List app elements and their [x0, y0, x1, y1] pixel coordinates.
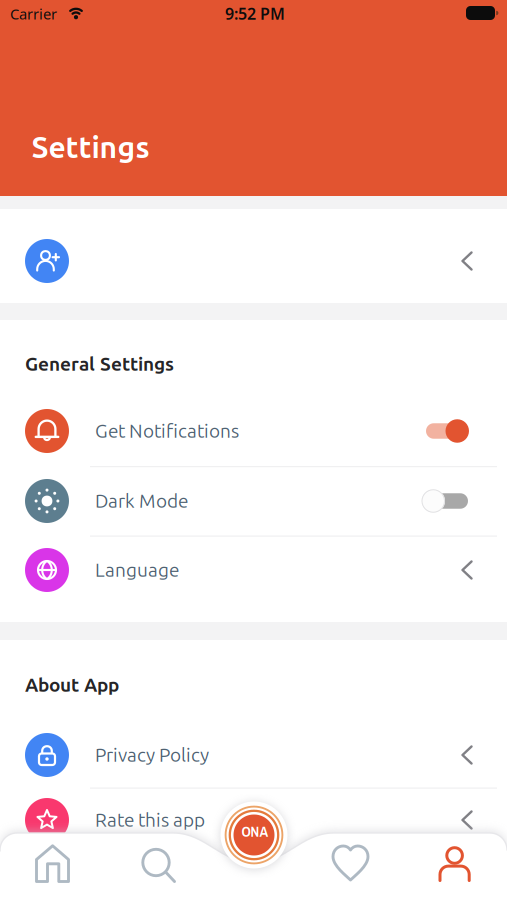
button[interactable]: Rate this app: [0, 786, 507, 854]
staticText: 9:52 PM: [225, 3, 285, 24]
button[interactable]: Invite friends: [0, 209, 507, 303]
button[interactable]: Favorites: [302, 838, 398, 900]
button[interactable]: Profile: [407, 838, 503, 900]
staticText: ONA: [241, 821, 268, 841]
button[interactable]: Get Notifications: [0, 397, 507, 465]
staticText: Rate this app: [95, 809, 205, 830]
staticText: Language: [95, 559, 179, 580]
button[interactable]: Search: [108, 838, 204, 900]
button[interactable]: Language: [0, 536, 507, 604]
button[interactable]: Privacy Policy: [0, 721, 507, 789]
button[interactable]: ONA: [220, 801, 287, 868]
staticText: Dark Mode: [95, 490, 188, 511]
staticText: Settings: [31, 130, 149, 164]
staticText: Carrier: [10, 4, 57, 23]
staticText: About App: [25, 674, 119, 695]
button[interactable]: Dark Mode: [0, 467, 507, 535]
staticText: General Settings: [25, 353, 174, 374]
button[interactable]: Home: [5, 838, 101, 900]
staticText: Privacy Policy: [95, 744, 209, 765]
staticText: Get Notifications: [95, 420, 239, 441]
